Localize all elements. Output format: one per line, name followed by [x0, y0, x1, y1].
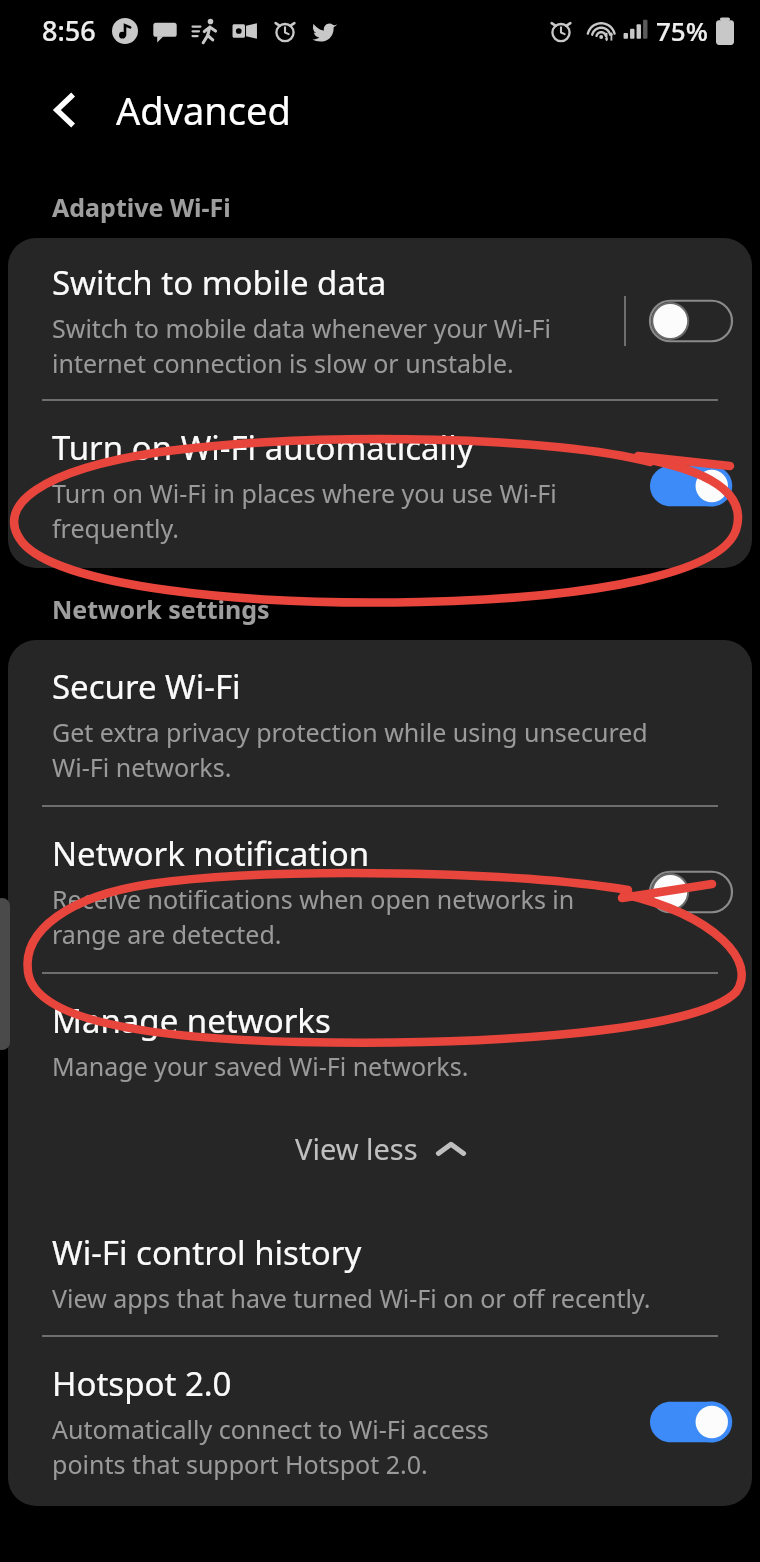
staticText: Secure Wi-Fi — [52, 664, 241, 709]
staticText: Manage networks — [52, 998, 331, 1043]
staticText: Receive notifications when open networks… — [52, 882, 575, 952]
staticText: 8:56 — [42, 12, 96, 49]
button[interactable]: Network notification — [8, 807, 752, 972]
staticText: Network notification — [52, 831, 370, 876]
staticText: View apps that have turned Wi-Fi on or o… — [52, 1281, 651, 1315]
button[interactable]: Toggle off — [650, 869, 732, 915]
staticText: Network settings — [52, 592, 270, 626]
button[interactable]: Toggle on — [650, 463, 732, 509]
button[interactable]: Wi-Fi control history — [8, 1208, 752, 1335]
button[interactable]: Secure Wi-Fi — [8, 640, 752, 805]
staticText: Turn on Wi-Fi in places where you use Wi… — [52, 476, 557, 546]
button[interactable]: Toggle off — [650, 298, 732, 344]
staticText: Advanced — [116, 84, 291, 136]
button[interactable]: Hotspot 2.0 — [8, 1337, 752, 1506]
button[interactable]: Toggle on — [650, 1399, 732, 1445]
staticText: Hotspot 2.0 — [52, 1361, 232, 1406]
staticText: Automatically connect to Wi-Fi access po… — [52, 1412, 489, 1482]
staticText: Adaptive Wi-Fi — [52, 190, 231, 224]
staticText: Wi-Fi control history — [52, 1230, 362, 1275]
button[interactable]: Turn on Wi-Fi automatically — [8, 401, 752, 568]
staticText: Manage your saved Wi-Fi networks. — [52, 1049, 469, 1083]
staticText: Turn on Wi-Fi automatically — [52, 425, 474, 470]
staticText: Switch to mobile data whenever your Wi-F… — [52, 311, 551, 381]
button[interactable]: Switch to mobile data — [8, 238, 752, 399]
button[interactable]: Back — [34, 79, 96, 141]
staticText: Switch to mobile data — [52, 260, 387, 305]
button[interactable]: View less — [8, 1093, 752, 1208]
button[interactable]: Manage networks — [8, 974, 752, 1093]
staticText: Get extra privacy protection while using… — [52, 715, 648, 785]
staticText: 75% — [656, 13, 708, 48]
staticText: View less — [295, 1129, 418, 1168]
